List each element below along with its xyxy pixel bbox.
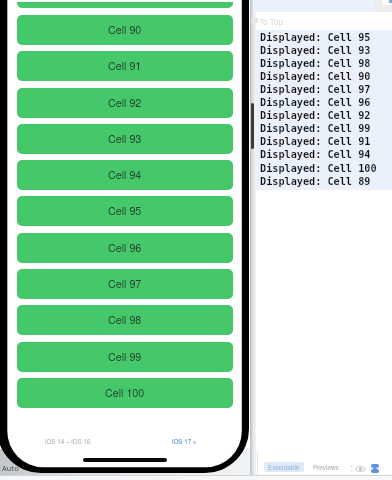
- button[interactable]: Cell 94: [17, 160, 233, 190]
- staticText: Auto: [2, 463, 19, 473]
- staticText: Displayed: Cell 98: [260, 58, 371, 70]
- staticText: Displayed: Cell 90: [260, 71, 371, 83]
- staticText: Displayed: Cell 99: [260, 123, 371, 135]
- staticText: Displayed: Cell 95: [260, 32, 371, 44]
- button[interactable]: Live preview: [370, 463, 380, 474]
- button[interactable]: iOS 14 – iOS 16: [45, 435, 91, 447]
- button[interactable]: Executable: [264, 462, 304, 472]
- button[interactable]: Cell 100: [17, 378, 233, 408]
- button[interactable]: Cell 99: [17, 342, 233, 372]
- staticText: Cell 99: [108, 349, 142, 364]
- staticText: iOS 17 +: [172, 437, 197, 446]
- staticText: Cell 92: [108, 95, 142, 110]
- button[interactable]: Cell 91: [17, 51, 233, 81]
- staticText: Displayed: Cell 96: [260, 97, 371, 109]
- button[interactable]: Cell 92: [17, 88, 233, 118]
- staticText: Previews: [313, 463, 339, 472]
- button[interactable]: Cell 95: [17, 196, 233, 226]
- staticText: Displayed: Cell 91: [260, 136, 371, 148]
- staticText: Cell 91: [108, 58, 142, 73]
- staticText: Cell 98: [108, 312, 142, 327]
- staticText: Displayed: Cell 94: [260, 149, 371, 161]
- staticText: To Top: [259, 16, 283, 27]
- button[interactable]: iOS 17 +: [172, 435, 197, 447]
- staticText: Displayed: Cell 92: [260, 110, 371, 122]
- button[interactable]: Cell 93: [17, 124, 233, 154]
- staticText: Cell 94: [108, 167, 142, 182]
- staticText: Cell 97: [108, 276, 142, 291]
- button[interactable]: Cell 98: [17, 305, 233, 335]
- button[interactable]: Cell 96: [17, 233, 233, 263]
- staticText: Cell 95: [108, 203, 142, 218]
- staticText: Executable: [268, 463, 300, 472]
- staticText: Displayed: Cell 89: [260, 176, 371, 188]
- button[interactable]: Previews: [313, 462, 339, 472]
- staticText: Cell 100: [105, 385, 145, 400]
- button[interactable]: Auto: [2, 463, 19, 473]
- staticText: Displayed: Cell 97: [260, 84, 371, 96]
- button[interactable]: Toggle visibility: [355, 464, 365, 473]
- button[interactable]: Cell 97: [17, 269, 233, 299]
- staticText: Displayed: Cell 93: [260, 45, 371, 57]
- staticText: Displayed: Cell 100: [260, 163, 377, 175]
- button[interactable]: [17, 2, 233, 8]
- staticText: Cell 93: [108, 131, 142, 146]
- staticText: Cell 96: [108, 240, 142, 255]
- staticText: Cell 90: [108, 22, 142, 37]
- button[interactable]: Cell 90: [17, 15, 233, 45]
- staticText: iOS 14 – iOS 16: [45, 437, 91, 446]
